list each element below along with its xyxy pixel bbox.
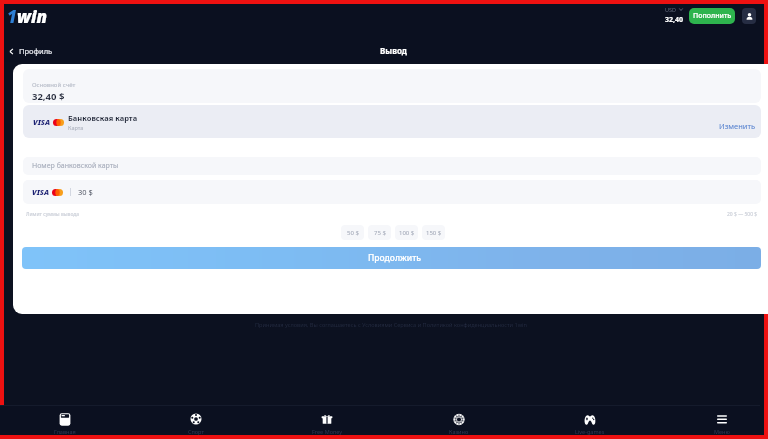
staticText: Основной счёт <box>32 81 76 89</box>
button[interactable]: Спорт <box>164 413 228 435</box>
staticText: VISA <box>33 117 51 127</box>
button[interactable]: VISA <box>23 180 761 204</box>
button[interactable]: Номер банковской карты <box>23 157 761 175</box>
button[interactable]: Профиль <box>6 43 55 59</box>
button[interactable]: 100 $ <box>395 225 418 240</box>
staticText: Банковская карта <box>68 113 138 123</box>
button[interactable]: 75 $ <box>368 225 391 240</box>
button[interactable]: Продолжить <box>22 247 761 269</box>
staticText: Вывод <box>380 45 407 56</box>
staticText: 100 $ <box>399 229 415 237</box>
staticText: win <box>17 5 48 28</box>
staticText: 75 $ <box>374 229 386 237</box>
button[interactable]: Меню <box>690 413 754 435</box>
staticText: Live-games <box>575 428 605 435</box>
staticText: 32,40 <box>665 15 684 25</box>
staticText: VISA <box>32 187 50 197</box>
staticText: USD <box>665 6 677 13</box>
button[interactable]: Казино <box>427 413 491 435</box>
staticText: Free Money <box>312 428 343 435</box>
staticText: Лимит суммы вывода <box>26 211 80 218</box>
button[interactable]: VISA <box>23 105 761 138</box>
staticText: Принимая условия, Вы соглашаетесь с Усло… <box>255 321 527 329</box>
staticText: Карта <box>68 124 84 131</box>
staticText: 50 $ <box>347 229 359 237</box>
button[interactable]: USD <box>665 6 687 25</box>
staticText: 20 $ — 500 $ <box>727 211 758 218</box>
staticText: Продолжить <box>368 252 421 264</box>
button[interactable]: Главная <box>33 413 97 435</box>
button[interactable]: 1 <box>5 3 50 30</box>
button[interactable]: Пополнить <box>689 8 735 24</box>
staticText: Казино <box>449 428 469 435</box>
staticText: 1 <box>7 5 17 28</box>
staticText: Меню <box>714 428 730 435</box>
button[interactable]: Profile <box>742 8 756 24</box>
staticText: Главная <box>54 428 76 435</box>
button[interactable]: 50 $ <box>341 225 364 240</box>
staticText: Спорт <box>188 428 204 435</box>
staticText: Профиль <box>19 46 53 56</box>
staticText: 150 $ <box>426 229 442 237</box>
staticText: Изменить <box>719 121 756 131</box>
button[interactable]: Free Money <box>295 413 359 435</box>
button[interactable]: 150 $ <box>422 225 445 240</box>
staticText: 30 $ <box>78 187 93 197</box>
staticText: 32,40 $ <box>32 90 65 103</box>
staticText: Пополнить <box>693 11 732 21</box>
staticText: Номер банковской карты <box>32 161 119 171</box>
button[interactable]: Live-games <box>558 413 622 435</box>
